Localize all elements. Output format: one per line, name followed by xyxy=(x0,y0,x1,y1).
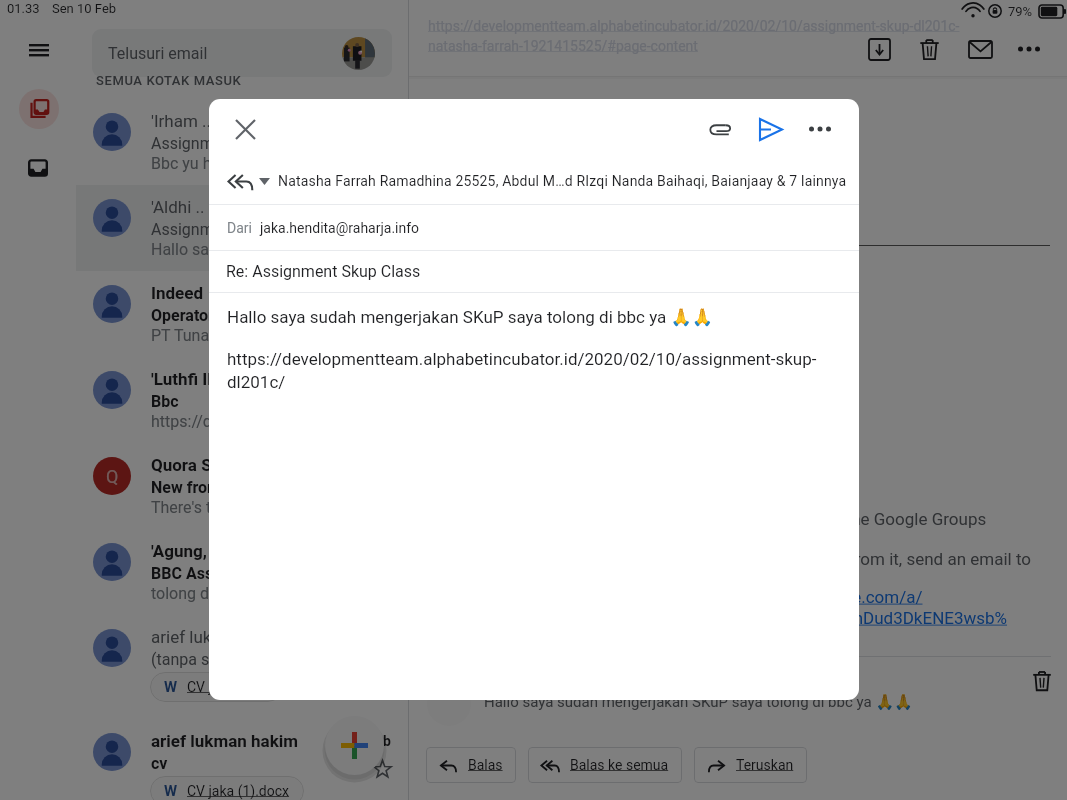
staticText: 'Irham .. 'Aldhi xyxy=(151,111,256,131)
staticText: SEMUA KOTAK MASUK xyxy=(96,73,242,88)
staticText: dl201c/ xyxy=(227,372,286,392)
button[interactable]: Archive xyxy=(855,25,903,73)
staticText: unsubscribe from this group and stop rec… xyxy=(435,549,1031,569)
staticText: (tanpa subjek) xyxy=(151,650,253,669)
staticText: Q xyxy=(106,466,119,487)
staticText: 79% xyxy=(1008,4,1033,19)
button[interactable]: Inbox xyxy=(17,147,59,189)
staticText: alphabetincubator.id/d/msgid/assignme/CA… xyxy=(435,608,1008,628)
staticText: https://develop xyxy=(151,412,259,431)
staticText: Bbc yu ht.. xyxy=(151,154,226,173)
staticText: Dari xyxy=(227,220,252,236)
staticText: Assignment Skup Class xyxy=(151,134,320,153)
button[interactable] xyxy=(0,271,408,357)
button[interactable] xyxy=(0,529,408,615)
button[interactable]: Mark unread xyxy=(956,25,1004,73)
staticText: Telusuri email xyxy=(108,44,208,63)
staticText: https://developmentteam.alphabetincubato… xyxy=(428,18,960,34)
staticText: CV jaka.docx xyxy=(187,679,269,695)
staticText: cv xyxy=(151,754,168,773)
button[interactable]: Close xyxy=(223,107,267,151)
staticText: Hallo saya sudah mengerjakan SKuP saya t… xyxy=(227,307,713,327)
button[interactable]: Balas ke semua xyxy=(528,747,682,783)
button[interactable] xyxy=(0,357,408,443)
staticText: CV jaka (1).docx xyxy=(187,783,290,799)
button[interactable]: All inboxes xyxy=(19,89,59,129)
staticText: Assignment Skup Class xyxy=(151,220,320,239)
button[interactable] xyxy=(0,719,408,800)
staticText: Hallo saya sudah mengerjakan SKuP saya t… xyxy=(484,693,913,711)
button[interactable]: More options xyxy=(1005,25,1053,73)
staticText: Re: Assignment Skup Class xyxy=(226,262,421,281)
button[interactable] xyxy=(76,185,408,271)
button[interactable]: Telusuri email xyxy=(92,29,392,77)
button[interactable]: Natasha Farrah Ramadhina 25525, Abdul M…… xyxy=(209,158,859,204)
staticText: You received this message because you're… xyxy=(435,509,987,529)
button[interactable]: More options xyxy=(798,107,842,151)
button[interactable]: Delete xyxy=(1020,659,1064,703)
staticText: Indeed xyxy=(151,283,204,303)
button[interactable]: Balas xyxy=(426,747,516,783)
staticText: BBC Assignment xyxy=(151,564,273,583)
button[interactable] xyxy=(0,443,408,529)
staticText: tolong di cek xyxy=(151,584,242,603)
staticText: W xyxy=(164,782,178,800)
staticText: Teruskan xyxy=(736,757,794,773)
button[interactable]: Compose xyxy=(325,716,384,775)
staticText: https://developmentteam.alphabetincubato… xyxy=(227,349,817,369)
staticText: b xyxy=(383,733,391,749)
staticText: jaka.hendita@raharja.info xyxy=(260,220,420,236)
staticText: 01.33 xyxy=(7,1,40,16)
button[interactable]: W xyxy=(150,672,283,702)
button[interactable]: Teruskan xyxy=(694,747,807,783)
staticText: New from Spaces xyxy=(151,478,278,497)
staticText: 'Luthfi Ilham xyxy=(151,369,246,389)
button[interactable] xyxy=(0,99,408,185)
button[interactable]: Attach file xyxy=(698,107,742,151)
staticText: assignment@alphabetincubator.id https://… xyxy=(435,587,923,607)
button[interactable]: Star xyxy=(373,760,392,779)
button[interactable]: Menu xyxy=(17,28,61,72)
button[interactable]: Delete xyxy=(905,25,953,73)
staticText: natasha-farrah-1921415525/#page-content xyxy=(428,38,698,54)
staticText: 'Agung, jaka 2 xyxy=(151,541,257,561)
button[interactable] xyxy=(0,615,408,715)
staticText: arief lukman xyxy=(151,627,245,647)
staticText: arief lukman hakim xyxy=(151,731,298,751)
staticText: W xyxy=(164,678,178,696)
button[interactable]: Hallo saya sudah mengerjakan SKuP saya t… xyxy=(227,307,859,392)
staticText: PT Tunas Dwipa xyxy=(151,326,266,345)
staticText: Balas xyxy=(468,757,503,773)
staticText: 'Aldhi .. 'Lutfi xyxy=(151,197,245,217)
button[interactable]: Dari xyxy=(209,205,859,250)
button[interactable]: Send xyxy=(748,107,792,151)
staticText: Natasha Farrah Ramadhina 25525, Abdul M…… xyxy=(278,173,847,189)
staticText: Hallo saya.. xyxy=(151,240,234,259)
staticText: Balas ke semua xyxy=(570,757,669,773)
staticText: Sen 10 Feb xyxy=(52,1,117,16)
button[interactable]: W xyxy=(150,776,304,800)
button[interactable]: Account xyxy=(342,37,375,70)
button[interactable]: Re: Assignment Skup Class xyxy=(209,251,859,292)
staticText: Quora Spaces xyxy=(151,455,258,475)
staticText: There's the new xyxy=(151,498,262,517)
staticText: Bbc xyxy=(151,392,179,411)
staticText: Operator Produksi xyxy=(151,306,282,325)
